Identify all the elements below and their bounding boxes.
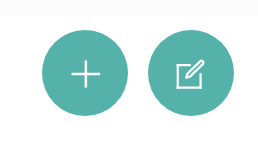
button[interactable]: Compose	[148, 30, 234, 116]
button[interactable]: Add	[42, 30, 128, 116]
